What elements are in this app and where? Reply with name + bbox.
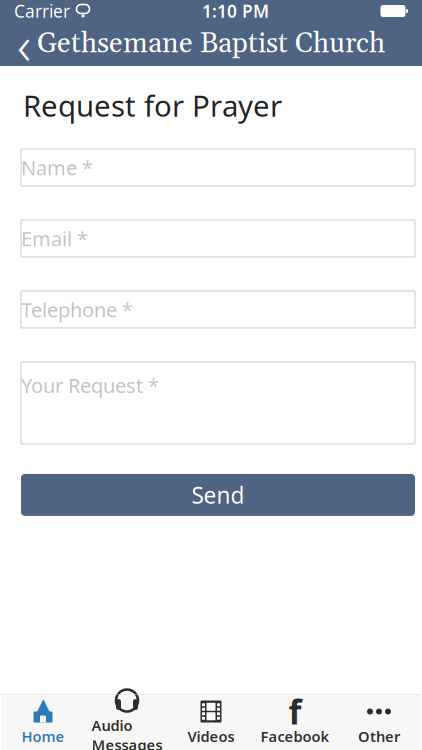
- staticText: Gethsemane Baptist Church: [37, 26, 385, 62]
- staticText: Request for Prayer: [23, 86, 282, 125]
- staticText: Audio Messages: [91, 715, 162, 750]
- staticText: Send: [191, 480, 244, 510]
- staticText: Facebook: [260, 726, 329, 746]
- button[interactable]: Send: [21, 474, 415, 516]
- staticText: ▲: [34, 693, 51, 719]
- staticText: f: [288, 689, 301, 734]
- staticText: Other: [358, 726, 400, 746]
- button[interactable]: ▲: [1, 694, 85, 750]
- staticText: Home: [21, 726, 64, 746]
- staticText: ‹: [17, 9, 31, 79]
- staticText: Name *: [21, 154, 93, 181]
- staticText: Email *: [21, 225, 88, 252]
- button[interactable]: f: [253, 694, 337, 750]
- button[interactable]: Videos: [169, 694, 253, 750]
- button[interactable]: Other: [337, 694, 421, 750]
- staticText: Carrier: [14, 0, 70, 22]
- staticText: Telephone *: [21, 296, 133, 323]
- staticText: 1:10 PM: [202, 0, 269, 22]
- button[interactable]: Back: [0, 22, 48, 66]
- staticText: Videos: [187, 726, 234, 746]
- staticText: Your Request *: [21, 372, 159, 399]
- button[interactable]: Audio Messages: [85, 694, 169, 750]
